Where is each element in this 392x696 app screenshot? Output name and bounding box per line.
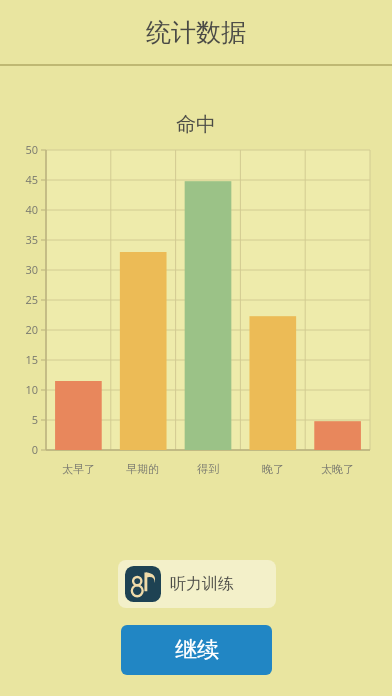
staticText: 统计数据 [146, 17, 246, 48]
staticText: 早期的 [126, 462, 159, 476]
staticText: 继续 [175, 636, 219, 664]
staticText: 25 [0, 292, 38, 307]
staticText: 太早了 [62, 462, 95, 476]
staticText: 5 [0, 412, 38, 427]
staticText: 得到 [197, 462, 219, 476]
staticText: 太晚了 [321, 462, 354, 476]
button[interactable]: 继续 [121, 625, 272, 675]
staticText: 50 [0, 142, 38, 157]
button[interactable]: 听力训练 [118, 560, 276, 608]
staticText: 30 [0, 262, 38, 277]
staticText: 命中 [176, 112, 216, 137]
staticText: 晚了 [262, 462, 284, 476]
staticText: 听力训练 [170, 574, 234, 594]
staticText: 15 [0, 352, 38, 367]
staticText: 40 [0, 202, 38, 217]
staticText: 0 [0, 442, 38, 457]
staticText: 10 [0, 382, 38, 397]
staticText: 45 [0, 172, 38, 187]
staticText: 20 [0, 322, 38, 337]
staticText: 35 [0, 232, 38, 247]
other: 听力训练 [125, 566, 161, 602]
